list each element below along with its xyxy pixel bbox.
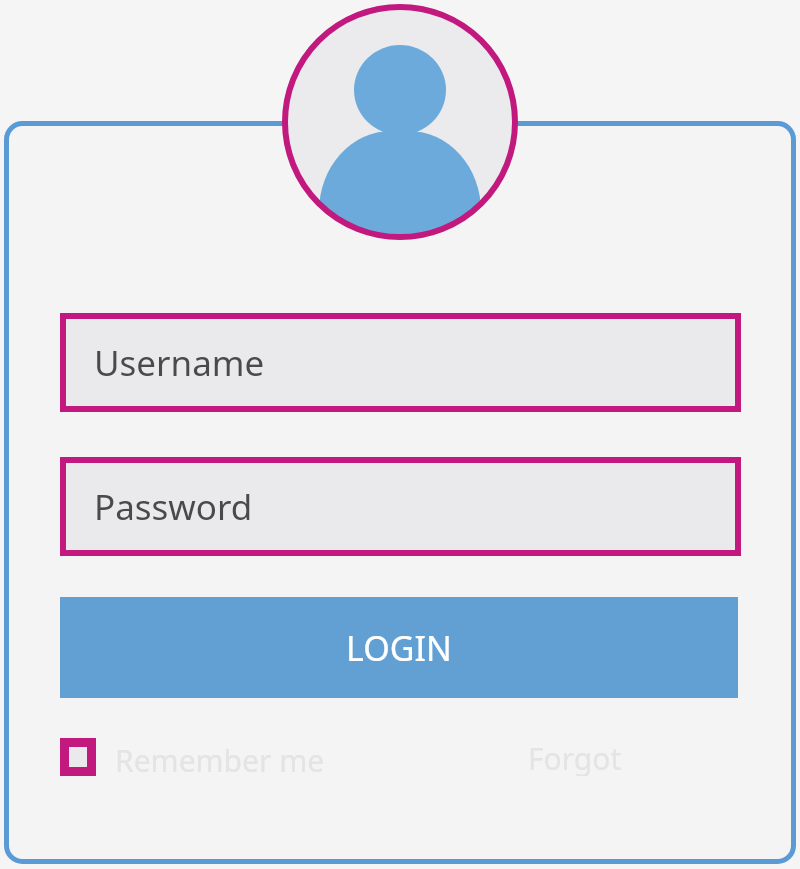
staticText: Forgot password? (528, 738, 742, 776)
staticText: Username (94, 339, 265, 387)
button[interactable]: Remember me (60, 738, 280, 776)
staticText: Password (94, 483, 253, 531)
other: Profile avatar (281, 3, 519, 241)
button[interactable]: LOGIN (60, 597, 738, 698)
button[interactable]: Forgot password? (528, 738, 742, 776)
button[interactable]: Username (60, 313, 741, 412)
staticText: LOGIN (346, 625, 452, 671)
button[interactable]: Password (60, 457, 741, 556)
staticText: Remember me (115, 740, 325, 778)
